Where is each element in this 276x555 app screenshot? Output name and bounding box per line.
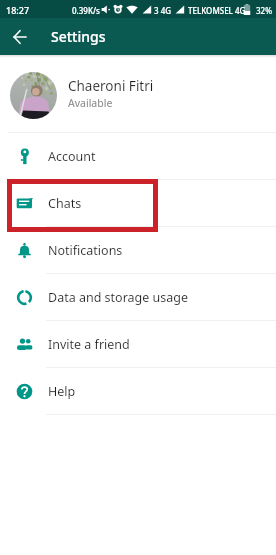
button[interactable]: Chaeroni Fitri: [0, 58, 276, 132]
button[interactable]: Help: [0, 368, 276, 414]
button[interactable]: Notifications: [0, 227, 276, 273]
staticText: TELKOMSEL 4G: [188, 5, 246, 16]
staticText: 32%: [256, 5, 272, 16]
staticText: 3 4G: [154, 5, 172, 16]
staticText: Settings: [51, 27, 106, 46]
staticText: Chats: [48, 195, 82, 212]
staticText: Available: [68, 96, 113, 110]
staticText: 18:27: [6, 4, 30, 16]
staticText: Data and storage usage: [48, 289, 189, 306]
staticText: Help: [48, 383, 76, 400]
button[interactable]: Invite a friend: [0, 321, 276, 367]
staticText: Chaeroni Fitri: [68, 77, 154, 95]
staticText: Invite a friend: [48, 336, 130, 353]
button[interactable]: Chats: [0, 180, 276, 226]
staticText: Account: [48, 148, 96, 165]
button[interactable]: Data and storage usage: [0, 274, 276, 320]
staticText: 0.39K/s: [72, 5, 100, 16]
button[interactable]: Account: [0, 133, 276, 179]
button[interactable]: Back: [7, 24, 33, 50]
staticText: Notifications: [48, 242, 123, 259]
